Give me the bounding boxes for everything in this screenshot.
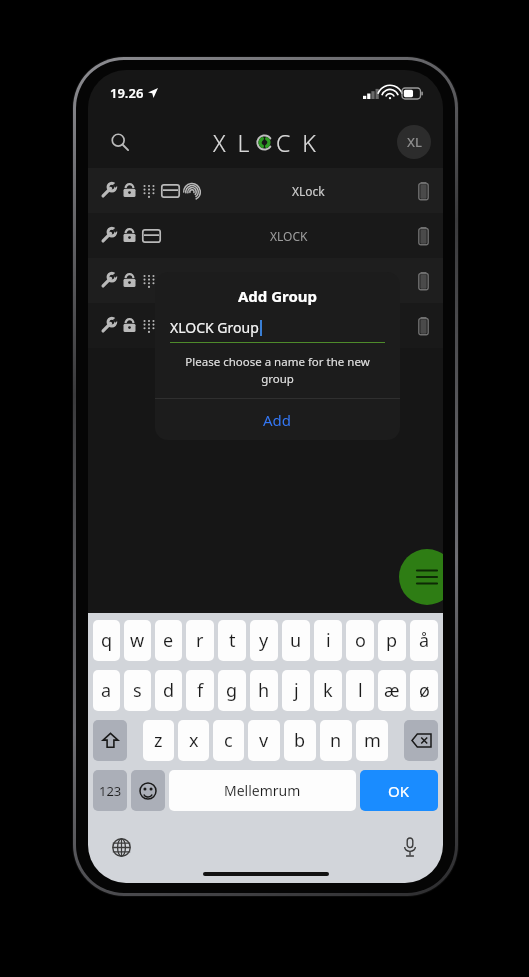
staticText: XLock [292, 183, 325, 199]
staticText: o [355, 628, 366, 653]
staticText: r [196, 628, 204, 653]
button[interactable]: i [314, 620, 342, 661]
staticText: f [197, 678, 204, 703]
button[interactable]: s [124, 670, 151, 711]
button[interactable]: h [250, 670, 278, 711]
staticText: Please choose a name for the new group [167, 354, 388, 386]
button[interactable]: p [378, 620, 406, 661]
button[interactable]: f [186, 670, 214, 711]
button[interactable]: b [284, 720, 316, 761]
staticText: w [130, 628, 145, 653]
button[interactable]: æ [378, 670, 406, 711]
button[interactable]: 123 [93, 770, 127, 811]
button[interactable]: å [410, 620, 438, 661]
staticText: s [133, 678, 142, 703]
button[interactable]: y [250, 620, 278, 661]
button[interactable]: Mellemrum [169, 770, 356, 811]
button[interactable]: XLock [88, 168, 443, 213]
staticText: k [323, 678, 333, 703]
button[interactable]: d [155, 670, 182, 711]
staticText: XLOCK Group [170, 318, 259, 337]
staticText: OK [388, 781, 410, 801]
staticText: n [330, 728, 342, 753]
button[interactable]: v [248, 720, 280, 761]
staticText: Add Group [155, 286, 400, 306]
staticText: Mellemrum [224, 781, 301, 800]
button[interactable]: m [356, 720, 388, 761]
button[interactable]: u [282, 620, 310, 661]
button[interactable]: a [93, 670, 120, 711]
button[interactable]: g [218, 670, 246, 711]
button[interactable]: e [155, 620, 182, 661]
staticText: C K [276, 127, 319, 158]
staticText: X L [213, 127, 253, 158]
button[interactable]: Change language [106, 832, 136, 862]
staticText: i [326, 628, 331, 653]
button[interactable]: q [93, 620, 120, 661]
staticText: æ [384, 678, 400, 703]
button[interactable]: Dictation [395, 832, 425, 862]
staticText: y [259, 628, 269, 653]
button[interactable]: w [124, 620, 151, 661]
button[interactable]: x [178, 720, 209, 761]
staticText: 123 [99, 782, 122, 800]
button[interactable]: t [218, 620, 246, 661]
staticText: å [419, 628, 430, 653]
button[interactable]: Add [155, 399, 400, 440]
staticText: m [364, 728, 381, 753]
button[interactable]: c [213, 720, 244, 761]
staticText: XL [407, 133, 422, 151]
staticText: l [358, 678, 363, 703]
button[interactable]: l [346, 670, 374, 711]
button[interactable]: XLOCK [88, 213, 443, 258]
button[interactable]: Menu [399, 549, 443, 605]
button[interactable]: j [282, 670, 310, 711]
staticText: ø [419, 678, 430, 703]
button[interactable]: ø [410, 670, 438, 711]
button[interactable]: z [143, 720, 174, 761]
staticText: 19.26 [110, 84, 144, 102]
button[interactable]: k [314, 670, 342, 711]
staticText: v [259, 728, 269, 753]
staticText: z [154, 728, 163, 753]
staticText: b [294, 728, 306, 753]
button[interactable] [88, 303, 443, 348]
staticText: c [224, 728, 233, 753]
staticText: e [163, 628, 174, 653]
staticText: j [294, 678, 299, 703]
staticText: x [189, 728, 199, 753]
staticText: u [290, 628, 302, 653]
staticText: q [101, 628, 113, 653]
button[interactable]: XL [397, 125, 431, 159]
staticText: p [386, 628, 398, 653]
button[interactable]: Search [100, 122, 140, 162]
staticText: Add [263, 410, 292, 430]
staticText: g [226, 678, 238, 703]
button[interactable]: n [320, 720, 352, 761]
button[interactable]: Emoji [131, 770, 165, 811]
button[interactable]: o [346, 620, 374, 661]
button[interactable]: Shift [93, 720, 127, 761]
staticText: h [258, 678, 270, 703]
button[interactable]: r [186, 620, 214, 661]
button[interactable]: Backspace [404, 720, 438, 761]
button[interactable] [88, 258, 443, 303]
staticText: d [163, 678, 175, 703]
staticText: XLOCK [270, 228, 308, 244]
button[interactable]: OK [360, 770, 438, 811]
staticText: t [229, 628, 236, 653]
staticText: a [101, 678, 112, 703]
